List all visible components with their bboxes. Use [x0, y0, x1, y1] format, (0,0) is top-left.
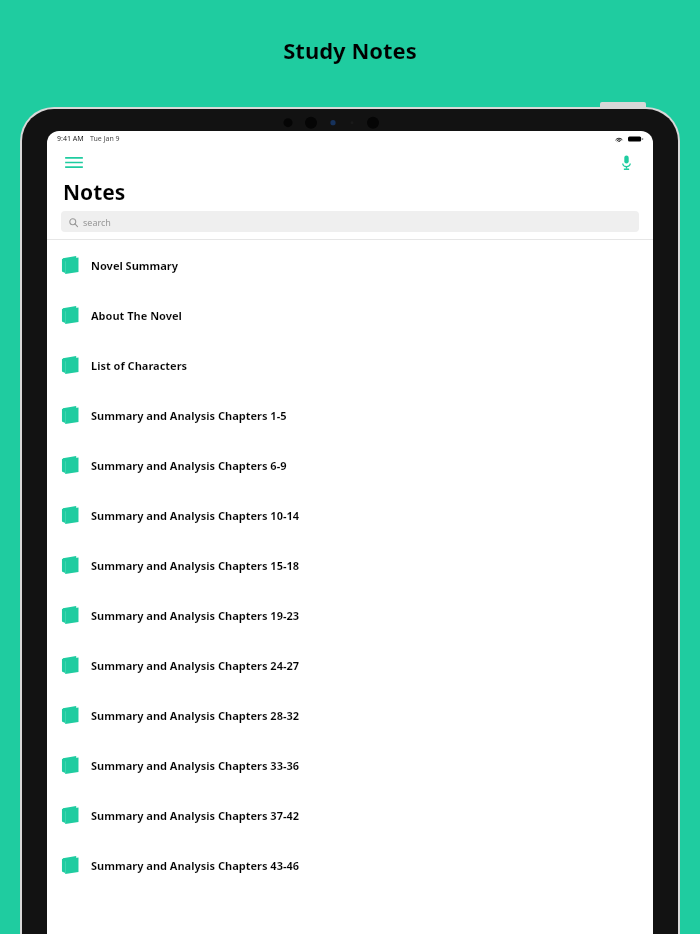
staticText: Summary and Analysis Chapters 19-23: [91, 608, 300, 623]
staticText: List of Characters: [91, 358, 188, 373]
button[interactable]: Summary and Analysis Chapters 37-42: [47, 790, 653, 840]
button[interactable]: Summary and Analysis Chapters 15-18: [47, 540, 653, 590]
button[interactable]: Summary and Analysis Chapters 24-27: [47, 640, 653, 690]
button[interactable]: Menu: [63, 151, 85, 173]
button[interactable]: Summary and Analysis Chapters 33-36: [47, 740, 653, 790]
button[interactable]: Summary and Analysis Chapters 19-23: [47, 590, 653, 640]
staticText: Summary and Analysis Chapters 24-27: [91, 658, 300, 673]
staticText: Notes: [63, 178, 126, 207]
staticText: 9:41 AM: [57, 134, 84, 144]
staticText: Summary and Analysis Chapters 6-9: [91, 458, 287, 473]
button[interactable]: Summary and Analysis Chapters 28-32: [47, 690, 653, 740]
staticText: Summary and Analysis Chapters 33-36: [91, 758, 300, 773]
staticText: search: [83, 216, 111, 228]
button[interactable]: Summary and Analysis Chapters 43-46: [47, 840, 653, 890]
staticText: Study Notes: [283, 35, 417, 65]
staticText: About The Novel: [91, 308, 182, 323]
staticText: Summary and Analysis Chapters 43-46: [91, 858, 300, 873]
button[interactable]: Voice search: [615, 151, 637, 173]
button[interactable]: Novel Summary: [47, 240, 653, 290]
button[interactable]: Summary and Analysis Chapters 1-5: [47, 390, 653, 440]
button[interactable]: search: [61, 211, 639, 232]
staticText: Summary and Analysis Chapters 10-14: [91, 508, 300, 523]
staticText: Summary and Analysis Chapters 1-5: [91, 408, 287, 423]
staticText: Novel Summary: [91, 258, 179, 273]
button[interactable]: Summary and Analysis Chapters 6-9: [47, 440, 653, 490]
button[interactable]: List of Characters: [47, 340, 653, 390]
staticText: Summary and Analysis Chapters 37-42: [91, 808, 300, 823]
button[interactable]: About The Novel: [47, 290, 653, 340]
button[interactable]: Summary and Analysis Chapters 10-14: [47, 490, 653, 540]
staticText: Tue Jan 9: [90, 134, 120, 144]
staticText: Summary and Analysis Chapters 15-18: [91, 558, 300, 573]
staticText: Summary and Analysis Chapters 28-32: [91, 708, 300, 723]
